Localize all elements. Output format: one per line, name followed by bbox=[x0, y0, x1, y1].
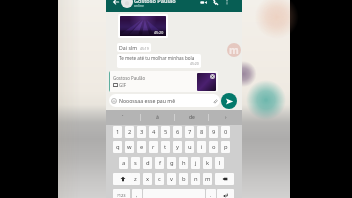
button[interactable]: . bbox=[206, 189, 216, 198]
staticText: 9 bbox=[212, 128, 216, 136]
button[interactable]: v bbox=[167, 173, 176, 185]
staticText: online bbox=[134, 3, 144, 8]
button[interactable]: de bbox=[175, 110, 208, 125]
button[interactable]: , bbox=[132, 189, 142, 198]
staticText: › bbox=[225, 114, 227, 121]
staticText: t bbox=[164, 143, 167, 151]
staticText: e bbox=[140, 143, 144, 151]
staticText: à bbox=[156, 114, 159, 121]
button[interactable]: More options bbox=[222, 0, 232, 7]
button[interactable]: y bbox=[173, 141, 182, 153]
staticText: a bbox=[122, 159, 126, 167]
button[interactable]: 4 bbox=[149, 126, 158, 138]
button[interactable]: Backspace bbox=[215, 173, 234, 185]
staticText: 45:19 bbox=[140, 46, 149, 51]
button[interactable]: p bbox=[221, 141, 230, 153]
staticText: Dai slm bbox=[119, 44, 138, 51]
staticText: j bbox=[195, 159, 197, 167]
button[interactable]: Gostoso Paulão bbox=[109, 71, 218, 92]
staticText: 8 bbox=[200, 128, 204, 136]
button[interactable]: Back bbox=[112, 0, 120, 6]
staticText: z bbox=[134, 175, 137, 183]
staticText: ´ bbox=[122, 114, 124, 121]
staticText: Gostoso Paulão bbox=[134, 0, 176, 5]
button[interactable]: c bbox=[155, 173, 164, 185]
staticText: h bbox=[182, 159, 186, 167]
button[interactable]: Voice call bbox=[210, 0, 220, 7]
button[interactable]: Shift bbox=[113, 173, 132, 185]
staticText: u bbox=[188, 143, 192, 151]
button[interactable]: à bbox=[141, 110, 174, 125]
button[interactable]: n bbox=[191, 173, 200, 185]
button[interactable]: o bbox=[209, 141, 218, 153]
button[interactable]: j bbox=[191, 157, 200, 169]
button[interactable]: Video message bbox=[120, 16, 166, 36]
button[interactable]: b bbox=[179, 173, 188, 185]
staticText: v bbox=[170, 175, 173, 183]
button[interactable]: i bbox=[197, 141, 206, 153]
staticText: 3 bbox=[140, 128, 144, 136]
button[interactable]: q bbox=[113, 141, 122, 153]
button[interactable]: Te mete até tu molhar minhas bola bbox=[119, 55, 199, 68]
button[interactable]: r bbox=[149, 141, 158, 153]
staticText: w bbox=[127, 143, 132, 151]
staticText: g bbox=[170, 159, 174, 167]
staticText: 45:20 bbox=[190, 61, 199, 66]
button[interactable]: a bbox=[119, 157, 128, 169]
button[interactable]: 6 bbox=[173, 126, 182, 138]
staticText: 6 bbox=[176, 128, 180, 136]
button[interactable]: ?123 bbox=[113, 189, 130, 198]
button[interactable]: u bbox=[185, 141, 194, 153]
button[interactable]: 7 bbox=[185, 126, 194, 138]
staticText: 4 bbox=[152, 128, 156, 136]
staticText: 1 bbox=[116, 128, 120, 136]
staticText: k bbox=[206, 159, 210, 167]
button[interactable]: l bbox=[215, 157, 224, 169]
staticText: y bbox=[176, 143, 179, 151]
staticText: n bbox=[194, 175, 198, 183]
button[interactable]: 1 bbox=[113, 126, 122, 138]
button[interactable]: s bbox=[131, 157, 140, 169]
button[interactable]: Enter bbox=[217, 189, 234, 198]
button[interactable]: g bbox=[167, 157, 176, 169]
button[interactable]: x bbox=[143, 173, 152, 185]
staticText: r bbox=[152, 143, 155, 151]
button[interactable]: Nooossaa esse pau mê bbox=[111, 94, 218, 107]
button[interactable]: 0 bbox=[221, 126, 230, 138]
staticText: Nooossaa esse pau mê bbox=[119, 97, 212, 104]
button[interactable]: z bbox=[131, 173, 140, 185]
staticText: 5 bbox=[164, 128, 168, 136]
button[interactable]: t bbox=[161, 141, 170, 153]
staticText: p bbox=[224, 143, 228, 151]
button[interactable]: 2 bbox=[125, 126, 134, 138]
staticText: 0 bbox=[224, 128, 228, 136]
button[interactable]: 5 bbox=[161, 126, 170, 138]
staticText: , bbox=[136, 192, 138, 198]
staticText: Gostoso Paulão bbox=[113, 75, 146, 81]
button[interactable]: m bbox=[203, 173, 212, 185]
button[interactable]: d bbox=[143, 157, 152, 169]
staticText: m bbox=[229, 43, 239, 57]
staticText: o bbox=[212, 143, 216, 151]
button[interactable]: 9 bbox=[209, 126, 218, 138]
button[interactable]: k bbox=[203, 157, 212, 169]
staticText: s bbox=[134, 159, 137, 167]
button[interactable]: Send bbox=[221, 93, 237, 109]
staticText: 7 bbox=[188, 128, 192, 136]
button[interactable]: h bbox=[179, 157, 188, 169]
button[interactable]: 3 bbox=[137, 126, 146, 138]
button[interactable]: Video call bbox=[198, 0, 208, 7]
button[interactable]: e bbox=[137, 141, 146, 153]
staticText: f bbox=[159, 159, 161, 167]
staticText: l bbox=[219, 159, 221, 167]
button[interactable]: w bbox=[125, 141, 134, 153]
button[interactable]: Dai slm bbox=[119, 43, 151, 52]
button[interactable]: f bbox=[155, 157, 164, 169]
staticText: 45:20 bbox=[154, 30, 164, 35]
staticText: q bbox=[116, 143, 120, 151]
button[interactable]: 8 bbox=[197, 126, 206, 138]
staticText: m bbox=[205, 175, 211, 183]
